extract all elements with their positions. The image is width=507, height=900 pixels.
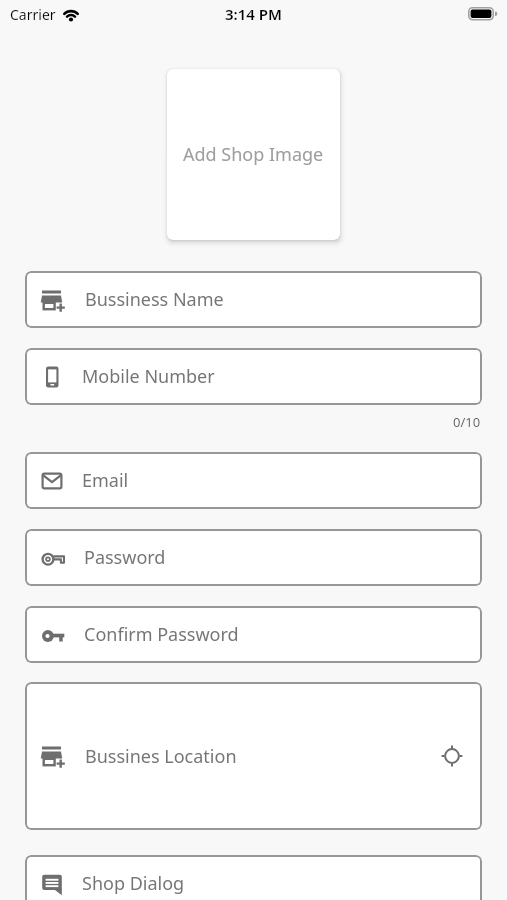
button[interactable]: Confirm Password	[25, 606, 482, 663]
staticText: Email	[82, 468, 129, 493]
staticText: Confirm Password	[84, 622, 239, 647]
button[interactable]: Password	[25, 529, 482, 586]
staticText: Bussiness Name	[85, 287, 224, 312]
staticText: Add Shop Image	[183, 142, 324, 167]
staticText: Bussines Location	[85, 744, 237, 769]
button[interactable]: Mobile Number	[25, 348, 482, 405]
staticText: Mobile Number	[82, 364, 215, 389]
button[interactable]: Add Shop Image	[167, 69, 340, 240]
staticText: Shop Dialog	[82, 871, 185, 896]
staticText: Carrier	[10, 5, 56, 24]
button[interactable]: Shop Dialog	[25, 855, 482, 900]
staticText: 3:14 PM	[225, 4, 282, 24]
staticText: Password	[84, 545, 166, 570]
button[interactable]: Email	[25, 452, 482, 509]
staticText: 0/10	[453, 413, 481, 431]
button[interactable]: Bussiness Name	[25, 271, 482, 328]
button[interactable]: Bussines Location	[25, 682, 482, 830]
